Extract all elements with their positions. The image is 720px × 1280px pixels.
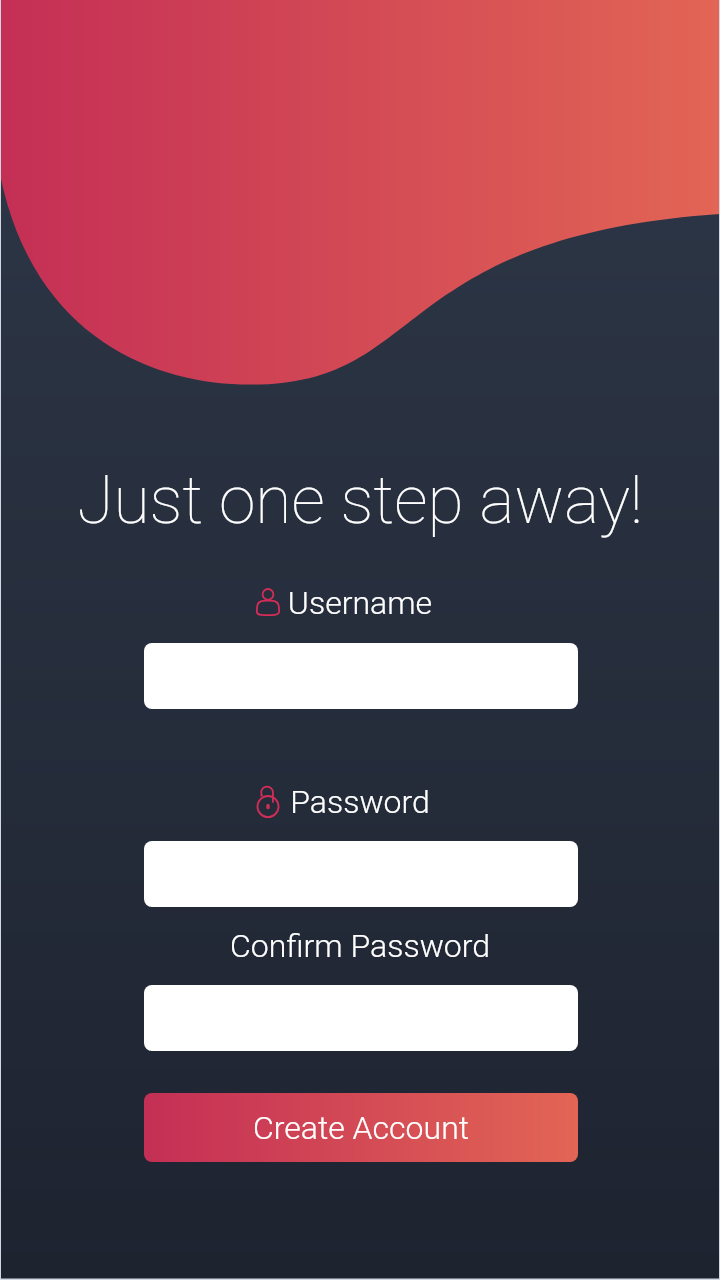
staticText: Just one step away! xyxy=(0,462,720,539)
button[interactable] xyxy=(144,643,578,709)
staticText: Username xyxy=(0,584,720,622)
other: User xyxy=(256,587,280,616)
button[interactable] xyxy=(144,985,578,1051)
staticText: Create Account xyxy=(253,1109,470,1147)
button[interactable]: Create Account xyxy=(144,1093,578,1162)
staticText: Confirm Password xyxy=(0,927,720,965)
staticText: Password xyxy=(0,783,720,821)
button[interactable] xyxy=(144,841,578,907)
other: Password xyxy=(256,785,280,818)
